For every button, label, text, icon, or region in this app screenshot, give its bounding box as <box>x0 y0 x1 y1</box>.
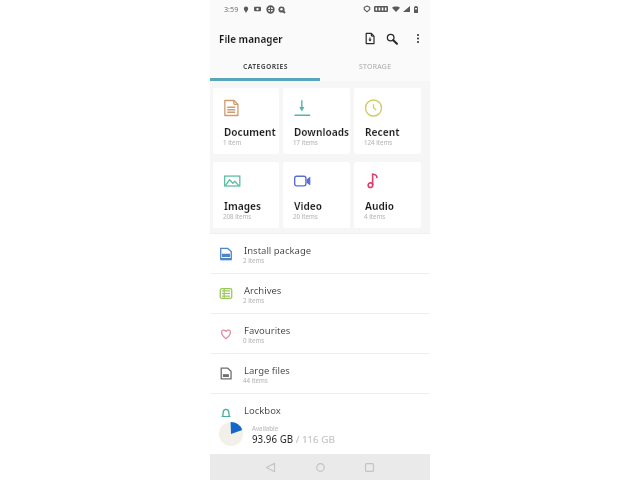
staticText: Large files <box>244 364 290 377</box>
staticText: 3:59 <box>224 4 239 14</box>
button[interactable]: Downloads <box>283 88 350 154</box>
staticText: Images <box>224 199 261 213</box>
button[interactable]: Search <box>383 29 402 48</box>
staticText: STORAGE <box>359 62 392 71</box>
staticText: File manager <box>219 33 283 46</box>
staticText: Audio <box>365 199 394 213</box>
staticText: 2 items <box>243 296 265 304</box>
button[interactable]: Video <box>283 162 350 228</box>
button[interactable]: Images <box>213 162 279 228</box>
staticText: CATEGORIES <box>243 62 288 71</box>
staticText: 93.96 GB / 116 GB <box>252 433 335 446</box>
staticText: 4 items <box>364 212 386 220</box>
staticText: Favourites <box>244 324 291 337</box>
staticText: Archives <box>244 284 282 297</box>
button[interactable]: Favourites <box>210 313 430 353</box>
staticText: 1 item <box>223 138 242 146</box>
button[interactable]: More options <box>408 29 427 48</box>
staticText: 2 items <box>243 256 265 264</box>
button[interactable]: New file <box>360 29 379 48</box>
staticText: 20 items <box>293 212 318 220</box>
button[interactable]: Install package <box>210 233 430 273</box>
staticText: Lockbox <box>244 404 281 417</box>
staticText: Available <box>252 424 279 432</box>
staticText: 0 items <box>243 336 265 344</box>
staticText: Recent <box>365 125 400 139</box>
button[interactable]: CATEGORIES <box>210 59 320 78</box>
staticText: Downloads <box>294 125 349 139</box>
staticText: 124 items <box>364 138 393 146</box>
staticText: Install package <box>244 244 312 257</box>
staticText: Document <box>224 125 276 139</box>
button[interactable]: Back <box>260 457 281 478</box>
button[interactable]: Large files <box>210 353 430 393</box>
button[interactable]: Recents <box>359 457 380 478</box>
button[interactable]: Document <box>213 88 279 154</box>
button[interactable]: STORAGE <box>320 59 430 78</box>
button[interactable]: Home <box>310 457 331 478</box>
button[interactable]: Lockbox <box>210 393 430 433</box>
staticText: 17 items <box>293 138 318 146</box>
staticText: 208 items <box>223 212 252 220</box>
button[interactable]: Recent <box>354 88 421 154</box>
staticText: Video <box>294 199 323 213</box>
button[interactable]: Audio <box>354 162 421 228</box>
button[interactable]: Archives <box>210 273 430 313</box>
staticText: 44 items <box>243 376 268 384</box>
